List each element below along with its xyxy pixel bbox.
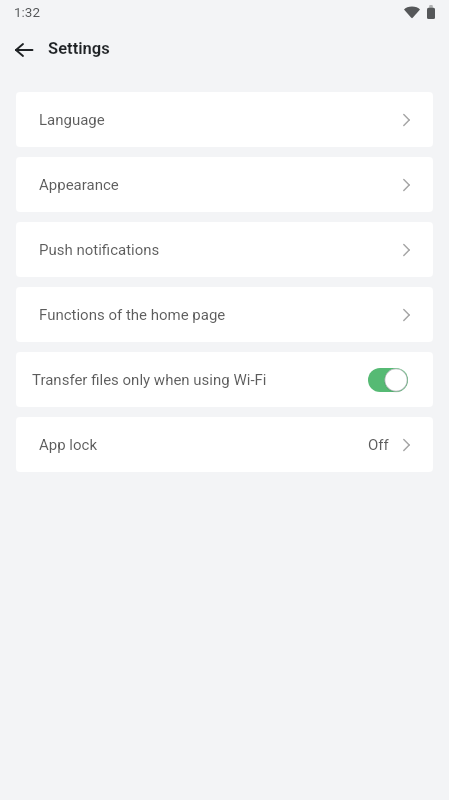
button[interactable]: Push notifications bbox=[16, 222, 433, 277]
button[interactable]: Transfer files only when using Wi-Fi bbox=[16, 352, 433, 407]
button[interactable]: Wi-Fi only transfer toggle bbox=[368, 368, 408, 392]
staticText: Off bbox=[368, 436, 389, 454]
staticText: Appearance bbox=[39, 176, 119, 194]
staticText: Push notifications bbox=[39, 241, 160, 259]
staticText: 1:32 bbox=[14, 4, 41, 20]
button[interactable]: Language bbox=[16, 92, 433, 147]
button[interactable]: Appearance bbox=[16, 157, 433, 212]
button[interactable]: App lock bbox=[16, 417, 433, 472]
button[interactable]: Back bbox=[4, 31, 44, 71]
staticText: Functions of the home page bbox=[39, 306, 226, 324]
staticText: Transfer files only when using Wi-Fi bbox=[32, 371, 267, 389]
staticText: Settings bbox=[48, 39, 110, 58]
staticText: Language bbox=[39, 111, 105, 129]
staticText: App lock bbox=[39, 436, 98, 454]
button[interactable]: Functions of the home page bbox=[16, 287, 433, 342]
